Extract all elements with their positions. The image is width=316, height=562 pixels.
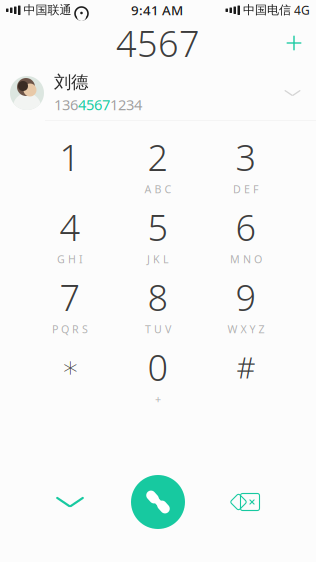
staticText: +: [155, 392, 161, 406]
staticText: 中国联通: [23, 3, 71, 17]
staticText: 2: [147, 133, 168, 181]
staticText: 刘德: [54, 72, 88, 93]
button[interactable]: Hide keypad: [26, 474, 114, 530]
button[interactable]: 8: [114, 273, 202, 337]
staticText: 136: [54, 95, 78, 114]
staticText: G H I: [57, 252, 83, 266]
staticText: 5: [147, 203, 168, 251]
button[interactable]: 0: [114, 343, 202, 407]
staticText: 7: [59, 273, 80, 321]
button[interactable]: 5: [114, 203, 202, 267]
staticText: J K L: [147, 252, 169, 266]
staticText: 6: [235, 203, 256, 251]
staticText: D E F: [233, 182, 259, 196]
button[interactable]: #: [202, 343, 290, 407]
staticText: A B C: [144, 182, 171, 196]
button[interactable]: 2: [114, 133, 202, 197]
button[interactable]: 7: [26, 273, 114, 337]
staticText: 3: [235, 133, 256, 181]
button[interactable]: 3: [202, 133, 290, 197]
staticText: P Q R S: [52, 322, 88, 336]
staticText: 9:41 AM: [131, 1, 183, 19]
staticText: 4567: [78, 95, 110, 114]
staticText: 1: [59, 133, 80, 181]
button[interactable]: 9: [202, 273, 290, 337]
button[interactable]: Delete: [202, 474, 290, 530]
staticText: 0: [147, 343, 168, 391]
staticText: T U V: [145, 322, 171, 336]
staticText: 4G: [294, 2, 310, 18]
staticText: W X Y Z: [227, 322, 264, 336]
staticText: M N O: [230, 252, 262, 266]
button[interactable]: Add contact: [272, 21, 316, 65]
staticText: ∗: [61, 350, 79, 384]
staticText: 4: [59, 203, 80, 251]
staticText: 9: [235, 273, 256, 321]
button[interactable]: 1: [26, 133, 114, 197]
button[interactable]: Call: [114, 474, 202, 530]
staticText: 中国电信: [243, 3, 291, 17]
staticText: 8: [147, 273, 168, 321]
button[interactable]: 刘德: [0, 66, 316, 121]
staticText: #: [236, 347, 255, 386]
staticText: 1234: [110, 95, 142, 114]
button[interactable]: 4: [26, 203, 114, 267]
staticText: 4567: [116, 19, 200, 67]
button[interactable]: 6: [202, 203, 290, 267]
button[interactable]: ∗: [26, 343, 114, 407]
